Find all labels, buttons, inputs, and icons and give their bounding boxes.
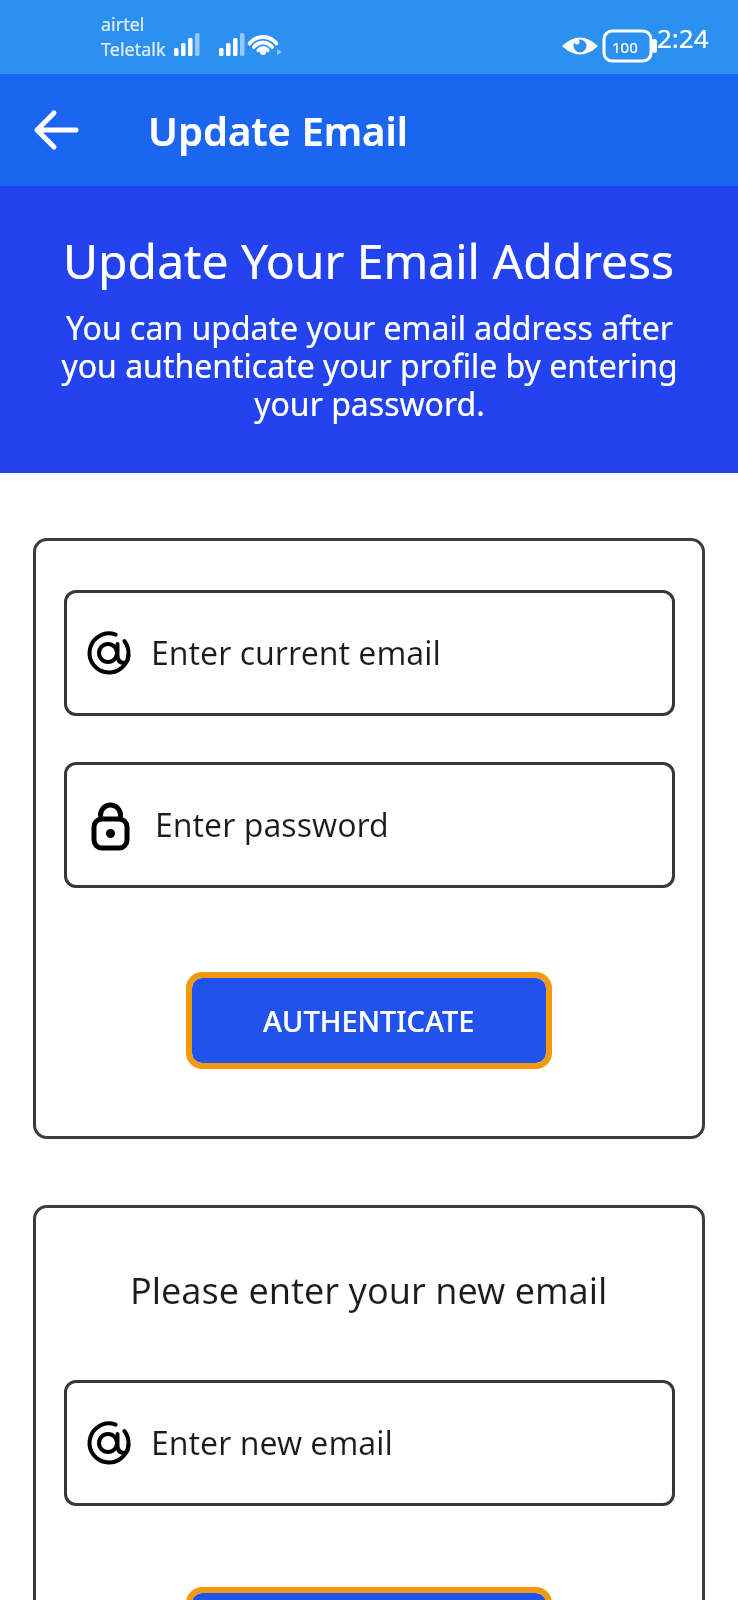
staticText: Teletalk: [101, 37, 166, 62]
staticText: 2:24: [657, 20, 709, 55]
button[interactable]: AUTHENTICATE: [192, 978, 546, 1063]
button[interactable]: Enter current email: [64, 590, 675, 716]
staticText: Please enter your new email: [130, 1266, 608, 1315]
staticText: You can update your email address after …: [61, 306, 678, 425]
button[interactable]: [26, 100, 86, 160]
staticText: Enter password: [155, 803, 389, 847]
staticText: AUTHENTICATE: [263, 1001, 475, 1040]
staticText: Enter current email: [151, 631, 441, 675]
staticText: 100: [612, 37, 638, 57]
button[interactable]: UPDATE EMAIL: [192, 1593, 546, 1600]
staticText: airtel: [101, 12, 145, 37]
staticText: Update Email: [148, 103, 409, 157]
staticText: Enter new email: [151, 1421, 393, 1465]
button[interactable]: Enter new email: [64, 1380, 675, 1506]
staticText: Update Your Email Address: [63, 228, 675, 293]
button[interactable]: Enter password: [64, 762, 675, 888]
